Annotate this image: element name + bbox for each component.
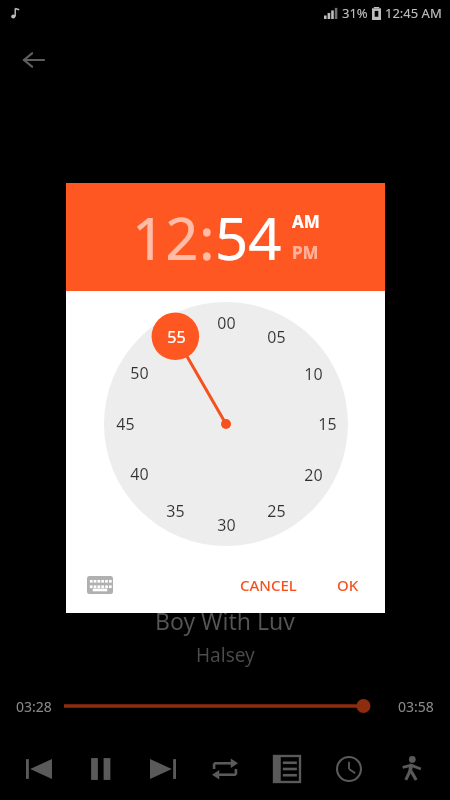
staticText: 45 — [116, 413, 135, 435]
staticText: 20 — [304, 464, 323, 486]
staticText: 50 — [130, 362, 149, 384]
staticText: 35 — [166, 500, 185, 522]
button[interactable]: CANCEL — [228, 565, 309, 605]
staticText: 12:45 AM — [385, 4, 442, 22]
button[interactable]: 12 — [132, 198, 199, 277]
staticText: 25 — [267, 500, 286, 522]
button[interactable] — [104, 302, 348, 546]
staticText: 05 — [267, 326, 286, 348]
button[interactable]: Next — [140, 746, 186, 792]
button[interactable]: Pause — [78, 746, 124, 792]
staticText: AM — [292, 210, 320, 233]
staticText: OK — [337, 575, 359, 595]
staticText: : — [199, 198, 215, 277]
staticText: CANCEL — [240, 575, 297, 595]
staticText: 30 — [217, 514, 236, 536]
staticText: 03:58 — [398, 697, 434, 716]
button[interactable]: Back — [12, 38, 56, 82]
staticText: 12 — [132, 198, 199, 277]
staticText: Halsey — [196, 642, 255, 668]
staticText: 15 — [318, 413, 337, 435]
button[interactable]: AM — [292, 210, 320, 233]
button[interactable]: OK — [325, 565, 371, 605]
button[interactable]: 54 — [215, 198, 282, 277]
staticText: PM — [292, 241, 319, 264]
button[interactable]: Walk — [388, 746, 434, 792]
staticText: 03:28 — [16, 697, 52, 716]
button[interactable]: Timer — [326, 746, 372, 792]
staticText: 54 — [215, 198, 282, 277]
button[interactable]: Repeat — [202, 746, 248, 792]
staticText: 00 — [217, 312, 236, 334]
button[interactable]: Switch to keyboard input — [80, 565, 120, 605]
button[interactable]: Previous — [16, 746, 62, 792]
staticText: 31% — [342, 4, 368, 22]
button[interactable]: Playlist — [264, 746, 310, 792]
staticText: Boy With Luv — [155, 605, 295, 636]
staticText: 55 — [167, 326, 186, 348]
staticText: 40 — [130, 463, 149, 485]
staticText: 10 — [304, 363, 323, 385]
button[interactable]: PM — [292, 241, 319, 264]
